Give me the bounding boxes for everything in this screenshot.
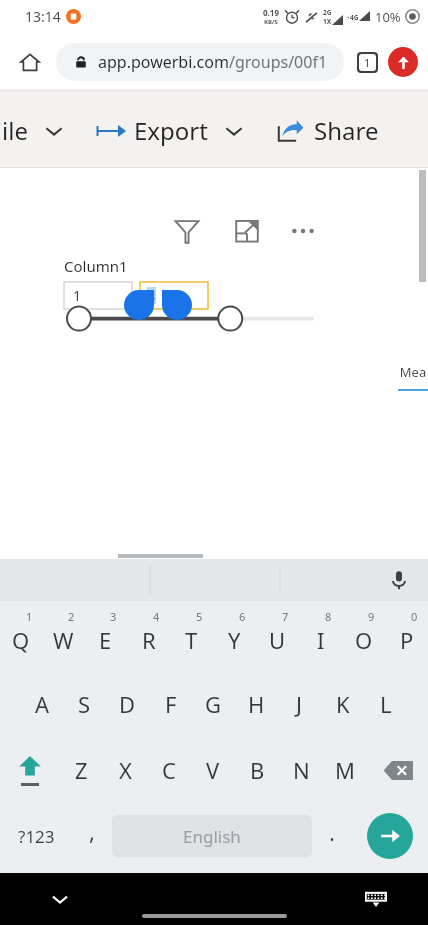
button[interactable]: app.powerbi.com — [56, 43, 344, 81]
button[interactable]: V — [191, 737, 235, 803]
button[interactable]: Tabs — [350, 45, 384, 79]
staticText: Mea — [398, 363, 428, 381]
staticText: K — [336, 689, 350, 719]
button[interactable]: Enter — [367, 813, 413, 859]
button[interactable]: ?123 — [0, 803, 72, 869]
staticText: I — [317, 625, 325, 655]
staticText: 3 — [110, 609, 117, 624]
staticText: R — [142, 625, 156, 655]
button[interactable]: 5 — [170, 601, 213, 671]
staticText: English — [183, 825, 241, 848]
button[interactable]: 2 — [42, 601, 84, 671]
button[interactable]: J — [278, 671, 321, 737]
button[interactable]: 7 — [256, 601, 299, 671]
staticText: X — [119, 755, 132, 785]
staticText: T — [185, 625, 198, 655]
button[interactable]: 4 — [127, 601, 170, 671]
staticText: U — [269, 625, 286, 655]
staticText: 1 — [73, 286, 82, 305]
staticText: Y — [228, 625, 241, 655]
button[interactable]: Shift — [0, 737, 60, 803]
button[interactable]: More options — [286, 214, 320, 248]
button[interactable]: Export — [92, 106, 248, 155]
button[interactable]: S — [63, 671, 106, 737]
button[interactable]: M — [323, 737, 367, 803]
staticText: 6 — [239, 609, 246, 624]
button[interactable]: ile — [0, 106, 70, 155]
staticText: P — [400, 625, 414, 655]
button[interactable]: Share — [272, 106, 383, 155]
staticText: 3 — [148, 287, 156, 304]
staticText: A — [35, 689, 50, 719]
staticText: /groups/00f1 — [229, 51, 328, 73]
button[interactable]: L — [364, 671, 407, 737]
staticText: KB/S — [264, 18, 278, 26]
staticText: 0 — [411, 609, 418, 624]
button[interactable]: 6 — [213, 601, 256, 671]
button[interactable]: A — [21, 671, 63, 737]
button[interactable]: . — [312, 803, 352, 869]
staticText: 1 — [364, 55, 371, 70]
button[interactable]: Hide keyboard — [40, 879, 80, 919]
staticText: 13:14 — [25, 7, 61, 26]
button[interactable]: B — [235, 737, 279, 803]
button[interactable]: H — [235, 671, 278, 737]
staticText: app.powerbi.com — [98, 51, 229, 73]
staticText: 2G — [323, 8, 332, 17]
staticText: F — [165, 689, 177, 719]
staticText: 1X — [323, 17, 332, 26]
staticText: 1 — [26, 609, 33, 624]
button[interactable]: Filters — [170, 214, 204, 248]
staticText: C — [162, 755, 176, 785]
button[interactable]: Voice input — [382, 563, 416, 597]
button[interactable]: English — [112, 815, 312, 857]
button[interactable]: Focus mode — [230, 214, 264, 248]
button[interactable]: G — [192, 671, 235, 737]
staticText: Z — [75, 755, 88, 785]
staticText: Export — [134, 114, 208, 147]
staticText: , — [89, 816, 95, 846]
staticText: G — [205, 689, 222, 719]
staticText: Share — [314, 114, 379, 147]
staticText: S — [78, 689, 91, 719]
button[interactable]: Mea — [398, 363, 428, 391]
button[interactable]: Z — [60, 737, 103, 803]
button[interactable]: F — [149, 671, 192, 737]
staticText: 4 — [153, 609, 160, 624]
button[interactable]: N — [279, 737, 323, 803]
button[interactable]: 3 — [84, 601, 127, 671]
button[interactable]: D — [106, 671, 149, 737]
button[interactable]: X — [103, 737, 147, 803]
staticText: J — [296, 689, 303, 719]
staticText: 7 — [282, 609, 289, 624]
button[interactable]: 0 — [385, 601, 428, 671]
button[interactable]: Backspace — [367, 737, 428, 803]
staticText: 8 — [325, 609, 332, 624]
button[interactable]: C — [147, 737, 191, 803]
staticText: B — [250, 755, 265, 785]
button[interactable]: 3 — [140, 282, 208, 309]
staticText: 9 — [368, 609, 375, 624]
staticText: 4G — [350, 13, 359, 22]
staticText: D — [119, 689, 136, 719]
staticText: . — [329, 817, 335, 847]
staticText: E — [99, 625, 112, 655]
button[interactable]: Update — [388, 47, 418, 77]
button[interactable]: 1 — [0, 601, 42, 671]
button[interactable]: 9 — [342, 601, 385, 671]
button[interactable]: Switch keyboard — [356, 879, 396, 919]
staticText: 10% — [375, 8, 401, 26]
staticText: · — [347, 10, 350, 24]
button[interactable]: 8 — [299, 601, 342, 671]
button[interactable]: K — [321, 671, 364, 737]
staticText: M — [335, 755, 355, 785]
staticText: N — [293, 755, 310, 785]
staticText: V — [206, 755, 220, 785]
staticText: W — [53, 625, 74, 655]
staticText: 5 — [196, 609, 203, 624]
staticText: ?123 — [18, 825, 55, 848]
button[interactable]: , — [72, 803, 112, 869]
button[interactable]: 1 — [64, 282, 132, 309]
button[interactable]: Home — [10, 42, 50, 82]
staticText: O — [355, 625, 373, 655]
